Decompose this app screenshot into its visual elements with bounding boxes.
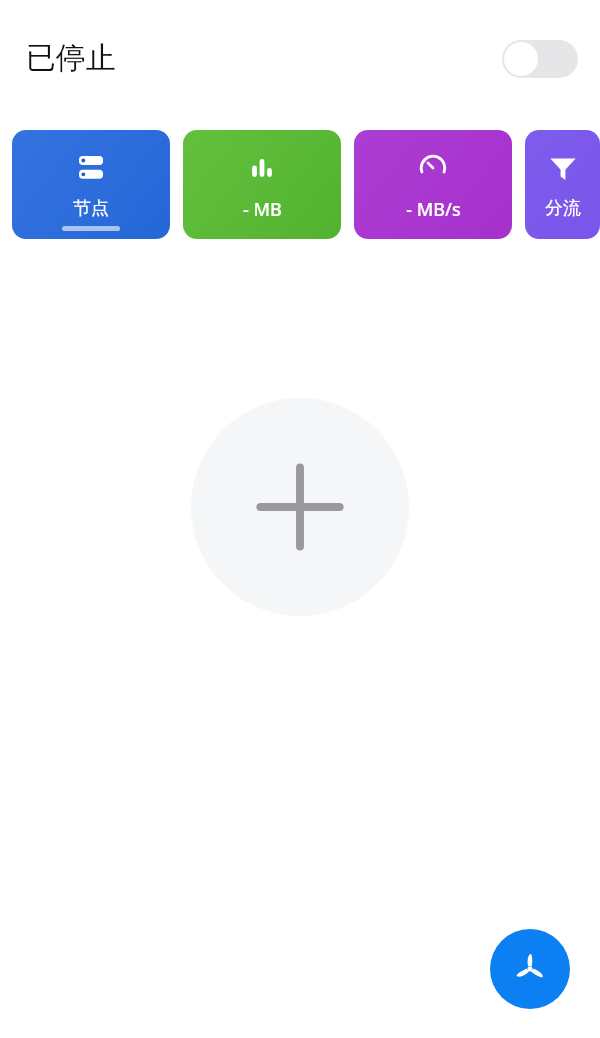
staticText: 节点 [73,197,109,220]
button[interactable]: Add profile [191,398,409,616]
button[interactable]: 分流 [525,130,600,239]
staticText: - MB [243,197,282,222]
staticText: 已停止 [26,39,116,77]
button[interactable]: Start service [490,929,570,1009]
button[interactable]: - MB [183,130,341,239]
button[interactable]: - MB/s [354,130,512,239]
staticText: - MB/s [406,197,461,222]
button[interactable]: Service toggle [502,40,578,78]
staticText: 分流 [545,197,581,220]
button[interactable]: 节点 [12,130,170,239]
